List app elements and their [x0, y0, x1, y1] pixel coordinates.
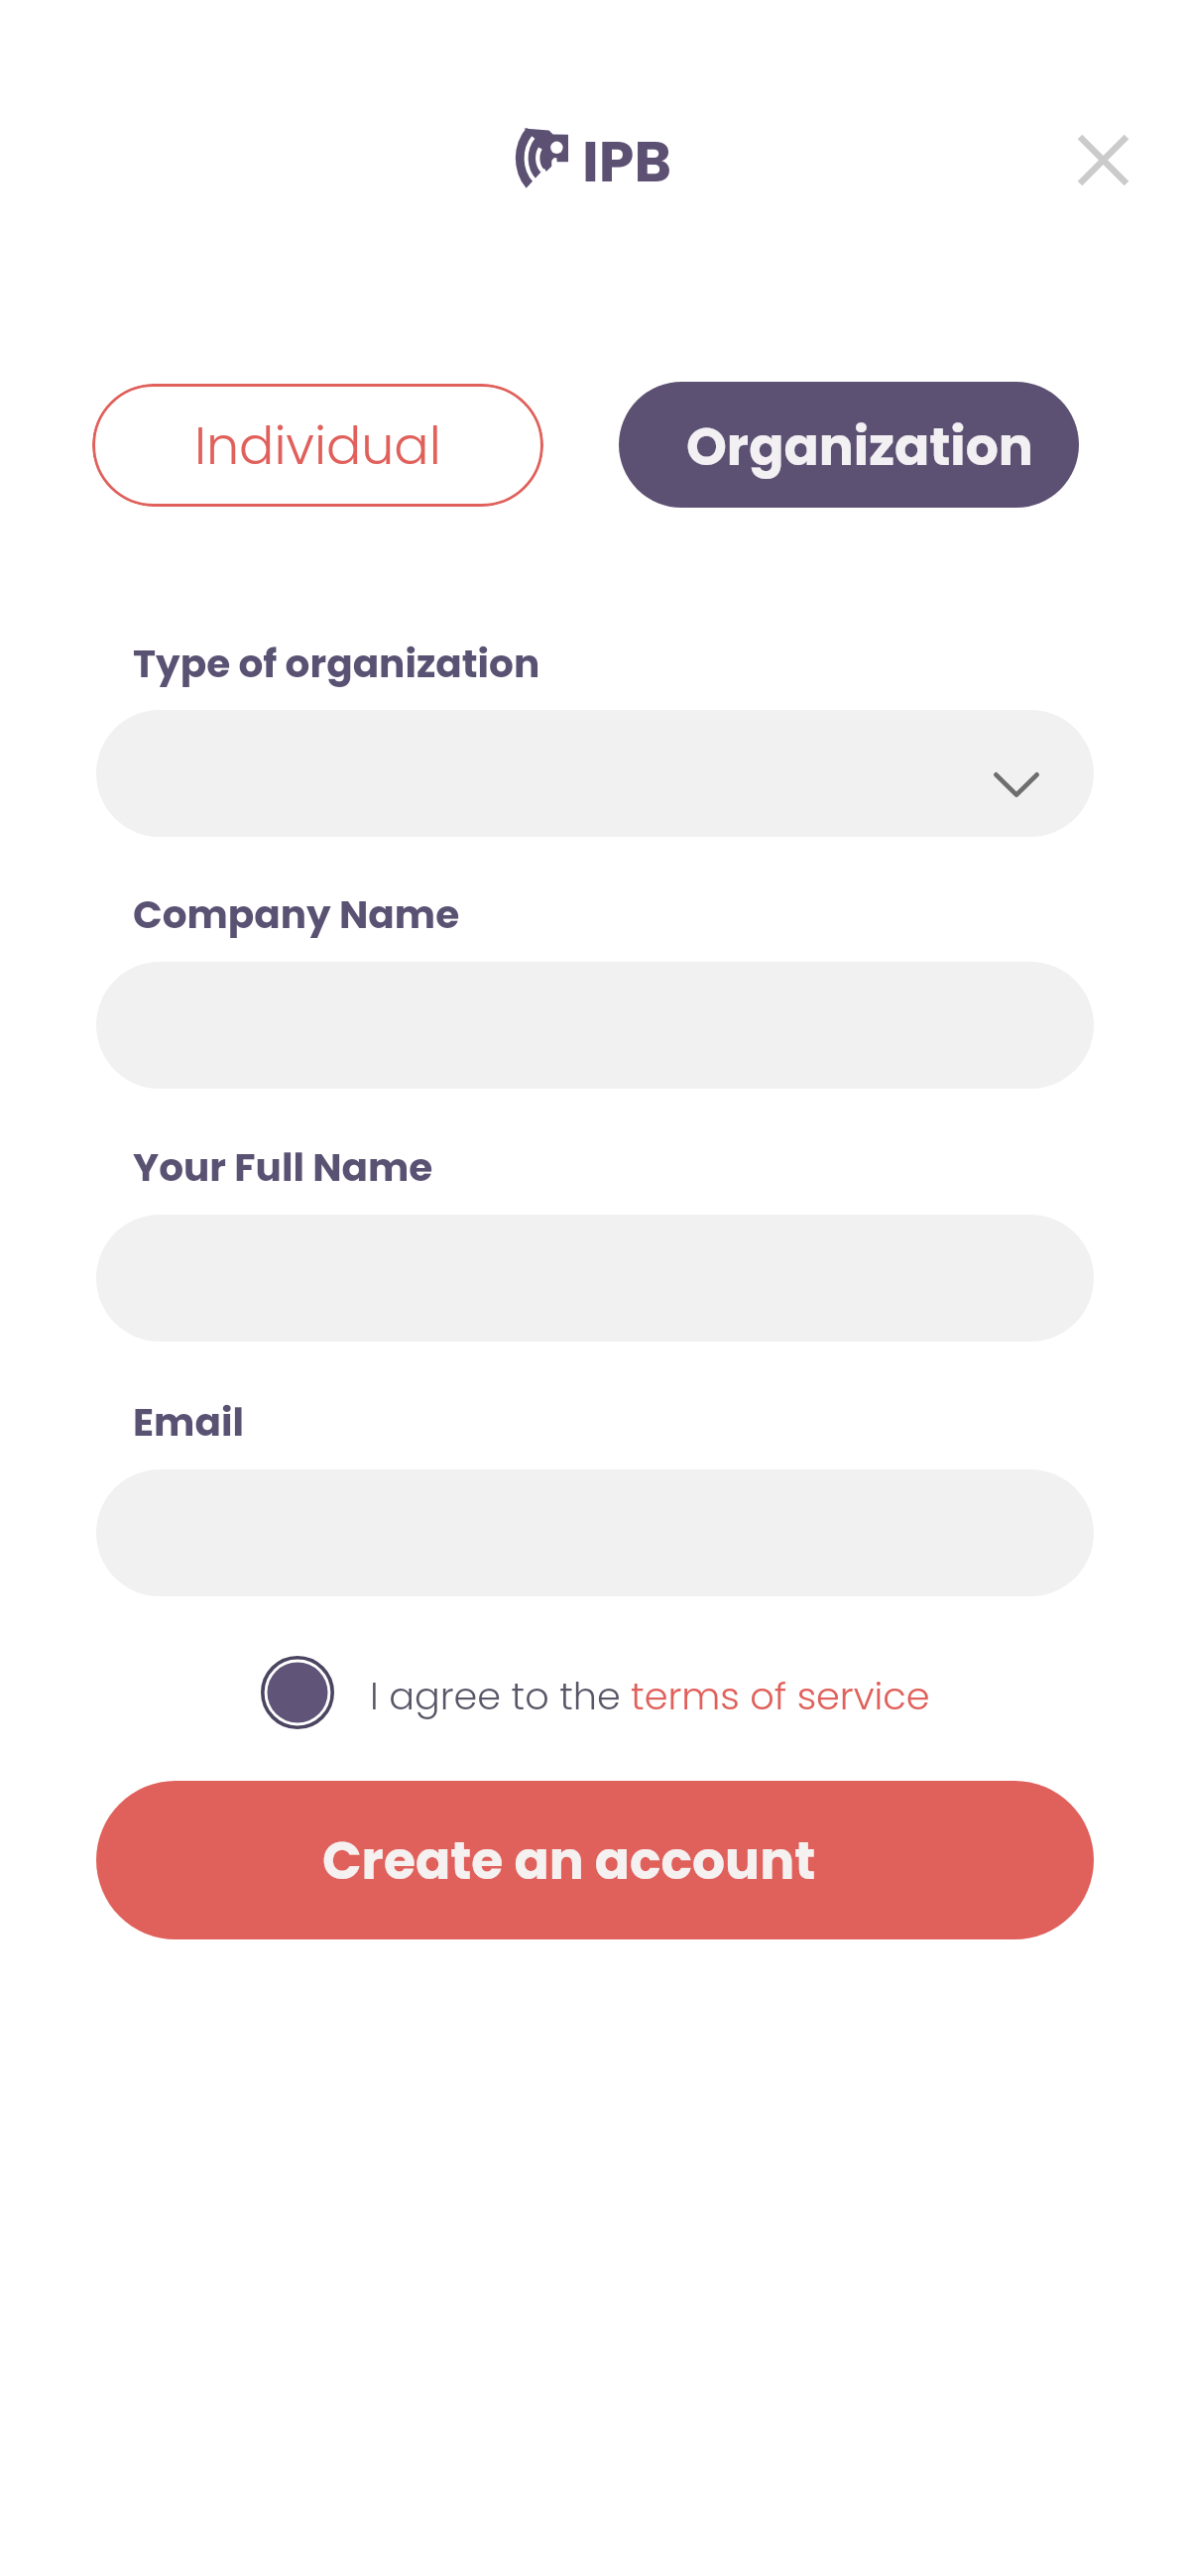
- staticText: Your Full Name: [133, 1140, 433, 1195]
- button[interactable]: Close: [1063, 120, 1142, 199]
- button[interactable]: I agree to the terms of service: [252, 1647, 939, 1738]
- staticText: Type of organization: [133, 637, 540, 691]
- staticText: Company Name: [133, 887, 460, 942]
- button[interactable]: Organization: [619, 382, 1079, 508]
- staticText: Organization: [686, 410, 1033, 483]
- staticText: Email: [133, 1395, 244, 1450]
- button[interactable]: Create an account: [96, 1781, 1094, 1939]
- button[interactable]: Individual: [92, 384, 543, 507]
- staticText: I agree to the terms of service: [370, 1670, 930, 1722]
- staticText: Create an account: [322, 1824, 816, 1897]
- button[interactable]: Type of organization: [96, 710, 1094, 837]
- staticText: IPB: [582, 122, 671, 201]
- staticText: Individual: [194, 410, 441, 482]
